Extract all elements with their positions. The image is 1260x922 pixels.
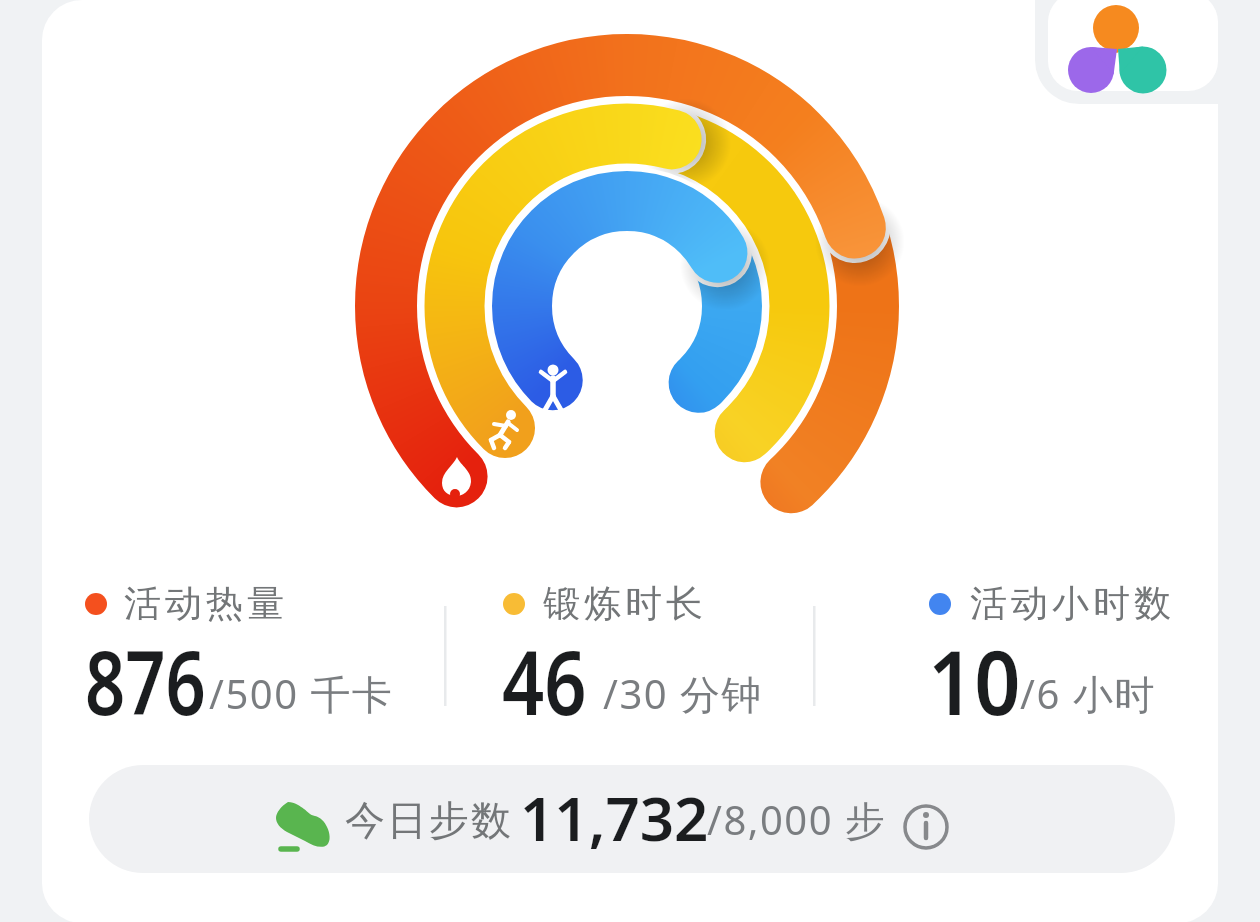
staticText: 10 [928, 621, 1021, 741]
staticText: 活动热量 [122, 580, 286, 627]
staticText: 活动小时数 [968, 580, 1173, 627]
staticText: 11,732 [520, 777, 709, 859]
staticText: 876 [85, 621, 207, 741]
staticText: /500 千卡 [209, 666, 394, 721]
staticText: 46 [502, 621, 587, 741]
staticText: /30 分钟 [603, 666, 764, 721]
staticText: /6 小时 [1020, 666, 1156, 721]
staticText: 锻炼时长 [541, 580, 705, 627]
staticText: 今日步数 [344, 795, 512, 845]
staticText: /8,000 步 [707, 792, 887, 847]
